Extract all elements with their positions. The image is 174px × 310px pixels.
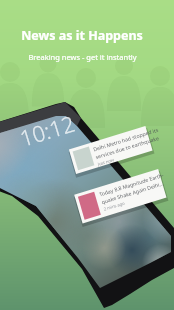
staticText: 2 mins ago (103, 200, 126, 213)
staticText: Today 8.8 Magnitude Earth- (98, 171, 165, 197)
staticText: Delhi Metro had stopped its (92, 126, 159, 152)
staticText: services due to earthquake (94, 134, 160, 160)
staticText: Breaking news - get it instantly (28, 52, 137, 62)
staticText: News as it Happens (21, 27, 143, 44)
staticText: quake Shake Again Delhi... (100, 179, 165, 205)
staticText: 10:12 (16, 108, 78, 153)
staticText: Just now (97, 157, 115, 168)
